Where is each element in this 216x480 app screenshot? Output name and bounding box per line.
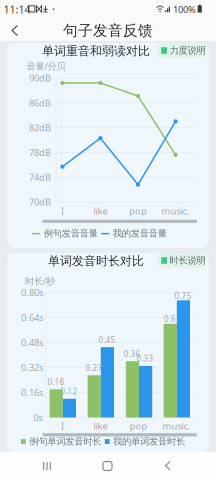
staticText: 0.27 (85, 363, 102, 373)
staticText: 0s (33, 411, 42, 424)
staticText: 0.12 (60, 386, 77, 397)
staticText: 0.18 (47, 377, 64, 387)
button[interactable]: Recent apps (27, 452, 67, 480)
staticText: 90dB (29, 72, 51, 84)
staticText: 0.80s (21, 286, 43, 299)
staticText: 例句发音音量 (44, 228, 98, 239)
staticText: pop (129, 205, 147, 217)
staticText: 0.45 (98, 335, 115, 345)
button[interactable]: 力度说明 (158, 43, 204, 58)
staticText: 我的发音音量 (113, 228, 167, 239)
staticText: 70dB (29, 196, 51, 208)
button[interactable]: Home (87, 452, 127, 480)
staticText: pop (129, 420, 147, 432)
staticText: 0.75 (174, 291, 191, 301)
staticText: 0.32s (21, 361, 43, 374)
staticText: 82dB (29, 121, 51, 134)
staticText: 11:14 (3, 2, 30, 16)
staticText: I (61, 205, 64, 217)
staticText: 单词发音时长对比 (48, 254, 144, 268)
staticText: 例句单词发音时长 (29, 436, 101, 447)
staticText: 力度说明 (170, 45, 206, 56)
staticText: 0.6 (164, 314, 176, 324)
staticText: 0.64s (21, 311, 43, 324)
button[interactable]: Back (2, 19, 28, 41)
staticText: music. (162, 205, 190, 217)
staticText: 时长说明 (170, 255, 206, 266)
button[interactable]: Back (148, 452, 188, 480)
staticText: 78dB (29, 146, 51, 159)
staticText: I (61, 420, 64, 432)
staticText: 单词重音和弱读对比 (42, 44, 150, 58)
staticText: 0.48s (21, 336, 43, 349)
staticText: 句子发音反馈 (63, 21, 153, 39)
staticText: 我的单词发音时长 (113, 436, 185, 447)
staticText: like (93, 420, 107, 432)
button[interactable]: 时长说明 (158, 253, 204, 268)
staticText: 0.36 (123, 349, 140, 359)
staticText: 100% (173, 3, 196, 15)
staticText: 86dB (29, 97, 51, 109)
staticText: 0.16s (21, 386, 43, 399)
staticText: 音量/分贝 (26, 60, 65, 72)
staticText: like (93, 205, 107, 217)
staticText: music. (162, 420, 190, 432)
staticText: 时长/秒 (25, 275, 55, 287)
staticText: 0.33 (136, 353, 153, 364)
staticText: 74dB (29, 171, 51, 183)
